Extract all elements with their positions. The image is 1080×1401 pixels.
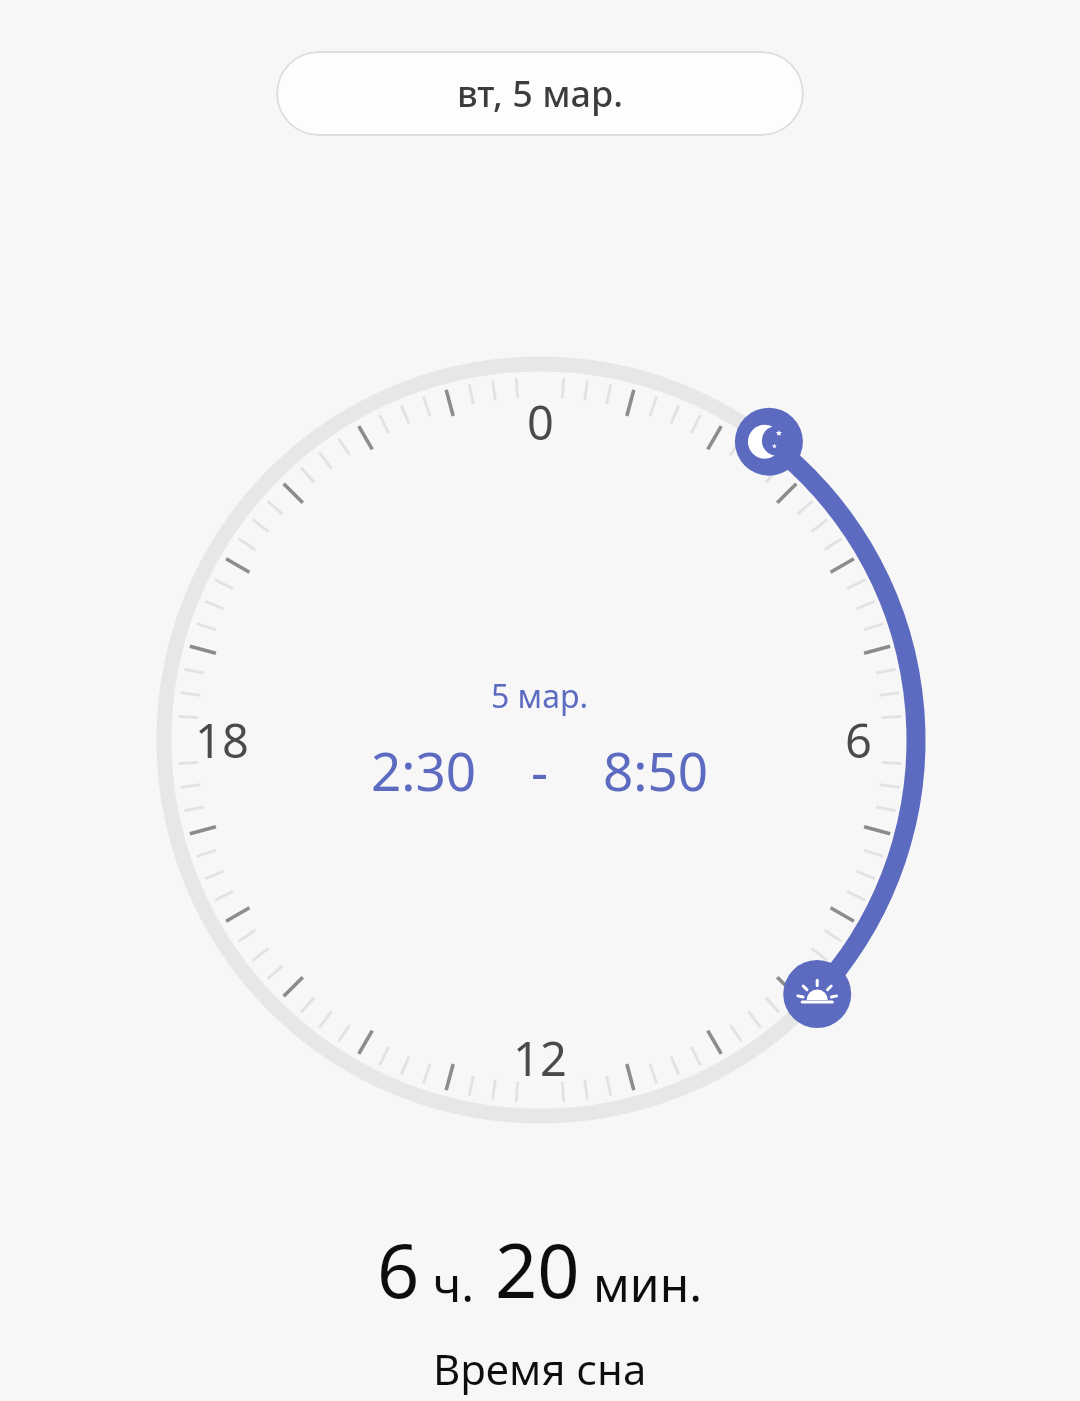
staticText: мин.	[593, 1251, 703, 1316]
staticText: 5 мар.	[491, 674, 589, 718]
staticText: 12	[513, 1026, 567, 1090]
staticText: вт, 5 мар.	[457, 69, 623, 118]
staticText: 18	[195, 708, 249, 772]
button[interactable]: вт, 5 мар.	[276, 51, 804, 136]
staticText: -	[531, 734, 549, 806]
staticText: 8:50	[603, 734, 709, 806]
staticText: Время сна	[433, 1340, 647, 1397]
staticText: 0	[527, 390, 554, 454]
staticText: 6	[377, 1219, 420, 1320]
staticText: ч.	[433, 1251, 475, 1316]
staticText: 20	[495, 1219, 580, 1320]
staticText: 6	[845, 708, 872, 772]
button[interactable]: Sleep time range dial	[135, 335, 945, 1145]
staticText: 2:30	[371, 734, 477, 806]
